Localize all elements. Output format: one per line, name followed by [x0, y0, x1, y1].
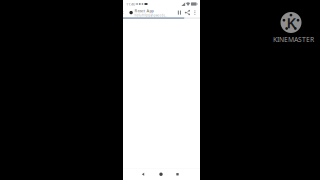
button[interactable]: Close: [120, 8, 124, 17]
button[interactable]: Pause: [175, 8, 183, 17]
staticText: K: [286, 13, 295, 32]
staticText: KINEMASTER: [273, 35, 314, 44]
staticText: React App: [134, 8, 153, 13]
button[interactable]: Recent apps: [171, 168, 183, 180]
button[interactable]: Back: [137, 168, 149, 180]
button[interactable]: Share: [183, 8, 191, 17]
button[interactable]: More options: [191, 8, 198, 17]
staticText: hbfurhfgtgyhqweedsghuyx.com: [134, 14, 167, 17]
staticText: 11:40: [126, 1, 135, 7]
button[interactable]: Home: [155, 168, 167, 180]
